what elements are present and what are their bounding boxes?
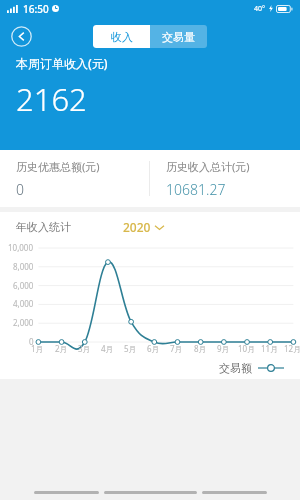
staticText: 6,000: [13, 280, 34, 291]
staticText: 2020: [123, 219, 151, 235]
staticText: 1月: [31, 343, 44, 354]
staticText: 7月: [170, 343, 183, 354]
staticText: 2,000: [13, 317, 34, 328]
button[interactable]: Recents: [202, 488, 267, 497]
staticText: 16:50: [23, 2, 49, 16]
staticText: 11月: [261, 343, 279, 354]
staticText: 4,000: [13, 298, 34, 309]
button[interactable]: Home: [104, 488, 197, 497]
staticText: 0: [16, 180, 24, 199]
staticText: 交易量: [162, 30, 195, 44]
staticText: 9月: [217, 343, 230, 354]
staticText: 40°: [254, 4, 266, 14]
staticText: 2月: [55, 343, 68, 354]
staticText: 12月: [284, 343, 300, 354]
staticText: 历史收入总计(元): [166, 159, 250, 174]
staticText: 10月: [238, 343, 256, 354]
staticText: 本周订单收入(元): [16, 55, 108, 71]
staticText: 0: [29, 336, 34, 347]
button[interactable]: 历史收入总计(元): [150, 150, 300, 207]
staticText: 10681.27: [166, 180, 226, 199]
button[interactable]: Back: [8, 23, 34, 49]
staticText: 历史优惠总额(元): [16, 159, 100, 174]
staticText: 交易额: [219, 361, 252, 375]
button[interactable]: 2020: [123, 219, 164, 235]
staticText: 年收入统计: [16, 220, 71, 234]
staticText: 2162: [16, 78, 87, 120]
staticText: 10,000: [8, 242, 34, 253]
staticText: 8月: [194, 343, 207, 354]
staticText: 8,000: [13, 261, 34, 272]
staticText: 3月: [78, 343, 91, 354]
staticText: 5月: [124, 343, 137, 354]
button[interactable]: Back: [34, 488, 99, 497]
staticText: 4月: [101, 343, 114, 354]
staticText: 6月: [147, 343, 160, 354]
staticText: 收入: [111, 30, 133, 44]
button[interactable]: 交易量: [150, 25, 207, 48]
button[interactable]: 收入: [93, 25, 150, 48]
button[interactable]: 历史优惠总额(元): [0, 150, 149, 207]
